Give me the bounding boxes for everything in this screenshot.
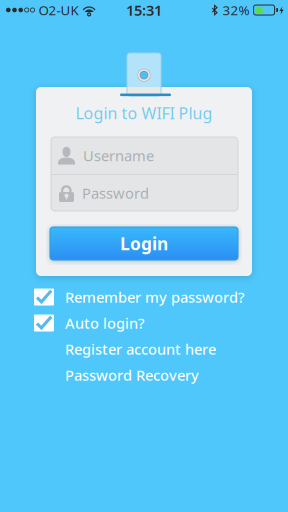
button[interactable]: Register account here	[34, 336, 240, 362]
button[interactable]: Login	[50, 227, 238, 260]
staticText: Login	[120, 232, 168, 255]
button[interactable]: Password Recovery	[34, 362, 240, 388]
button[interactable]: Remember my password?	[34, 284, 240, 310]
staticText: Register account here	[65, 339, 216, 359]
staticText: Password	[82, 183, 149, 203]
staticText: Auto login?	[65, 313, 145, 333]
button[interactable]: Password	[51, 175, 238, 211]
staticText: O2-UK	[39, 1, 79, 19]
staticText: Login to WIFI Plug	[75, 102, 212, 124]
staticText: Username	[83, 146, 154, 165]
button[interactable]: Auto login?	[34, 310, 240, 336]
staticText: 15:31	[126, 0, 162, 20]
staticText: Password Recovery	[65, 365, 199, 385]
button[interactable]: Username	[51, 137, 238, 174]
staticText: Remember my password?	[65, 287, 245, 307]
staticText: 32%	[223, 1, 250, 19]
